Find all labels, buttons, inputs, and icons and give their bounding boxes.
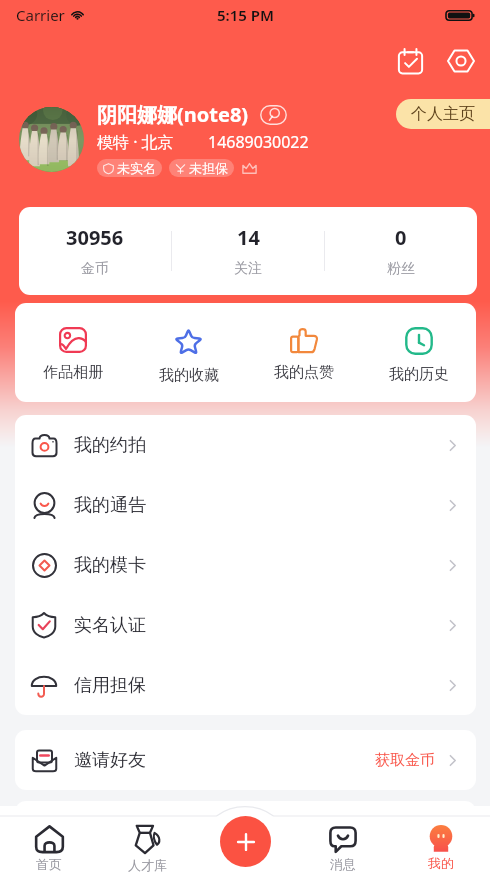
staticText: 关注 bbox=[234, 260, 262, 278]
button[interactable]: 30956 bbox=[19, 207, 171, 295]
button[interactable]: 作品相册 bbox=[15, 303, 131, 402]
staticText: 14689030022 bbox=[208, 131, 309, 153]
staticText: 我的收藏 bbox=[159, 366, 219, 385]
staticText: 30956 bbox=[66, 224, 124, 251]
button[interactable]: 我的通告 bbox=[15, 475, 476, 535]
staticText: 人才库 bbox=[128, 857, 167, 873]
staticText: 我的历史 bbox=[389, 365, 449, 384]
staticText: 0 bbox=[395, 224, 407, 251]
staticText: 模特 · 北京 bbox=[97, 131, 174, 153]
staticText: 14 bbox=[237, 224, 260, 251]
button[interactable]: 我的模卡 bbox=[15, 535, 476, 595]
button[interactable]: 我的 bbox=[392, 816, 490, 876]
staticText: 未担保 bbox=[189, 160, 228, 176]
staticText: 我的通告 bbox=[74, 494, 146, 517]
staticText: 未实名 bbox=[117, 160, 156, 176]
staticText: 消息 bbox=[330, 856, 356, 872]
button[interactable]: Search bbox=[260, 105, 287, 125]
button[interactable]: Avatar bbox=[19, 107, 84, 172]
staticText: 我的约拍 bbox=[74, 434, 146, 457]
button[interactable]: 个人主页 bbox=[396, 99, 490, 129]
staticText: 5:15 PM bbox=[217, 5, 274, 25]
staticText: 我的模卡 bbox=[74, 554, 146, 577]
button[interactable]: 14 bbox=[172, 207, 324, 295]
button[interactable]: 0 bbox=[325, 207, 477, 295]
button[interactable]: 未担保 bbox=[169, 159, 234, 177]
staticText: 金币 bbox=[81, 260, 109, 278]
button[interactable]: 未实名 bbox=[97, 159, 162, 177]
button[interactable]: 我的约拍 bbox=[15, 415, 476, 475]
staticText: 首页 bbox=[36, 856, 62, 872]
staticText: 粉丝 bbox=[387, 260, 415, 278]
staticText: 个人主页 bbox=[411, 104, 475, 124]
button[interactable]: Settings bbox=[440, 40, 482, 82]
button[interactable]: 我的点赞 bbox=[246, 303, 361, 402]
button[interactable]: 人才库 bbox=[98, 816, 196, 876]
button[interactable]: 邀请好友 bbox=[15, 730, 476, 790]
button[interactable]: 我的历史 bbox=[361, 303, 476, 402]
staticText: 实名认证 bbox=[74, 614, 146, 637]
staticText: 信用担保 bbox=[74, 674, 146, 697]
staticText: 阴阳娜娜(note8) bbox=[97, 101, 249, 128]
button[interactable]: Tasks bbox=[389, 40, 431, 82]
button[interactable]: 信用担保 bbox=[15, 655, 476, 715]
staticText: 获取金币 bbox=[375, 751, 435, 770]
staticText: 作品相册 bbox=[43, 363, 103, 382]
button[interactable]: Add bbox=[220, 816, 271, 867]
button[interactable]: 实名认证 bbox=[15, 595, 476, 655]
staticText: 我的 bbox=[428, 855, 454, 871]
button[interactable]: 消息 bbox=[294, 816, 392, 876]
staticText: 我的点赞 bbox=[274, 363, 334, 382]
staticText: 邀请好友 bbox=[74, 749, 146, 772]
button[interactable]: 我的收藏 bbox=[131, 303, 246, 402]
button[interactable]: 首页 bbox=[0, 816, 98, 876]
staticText: Carrier bbox=[16, 5, 65, 25]
